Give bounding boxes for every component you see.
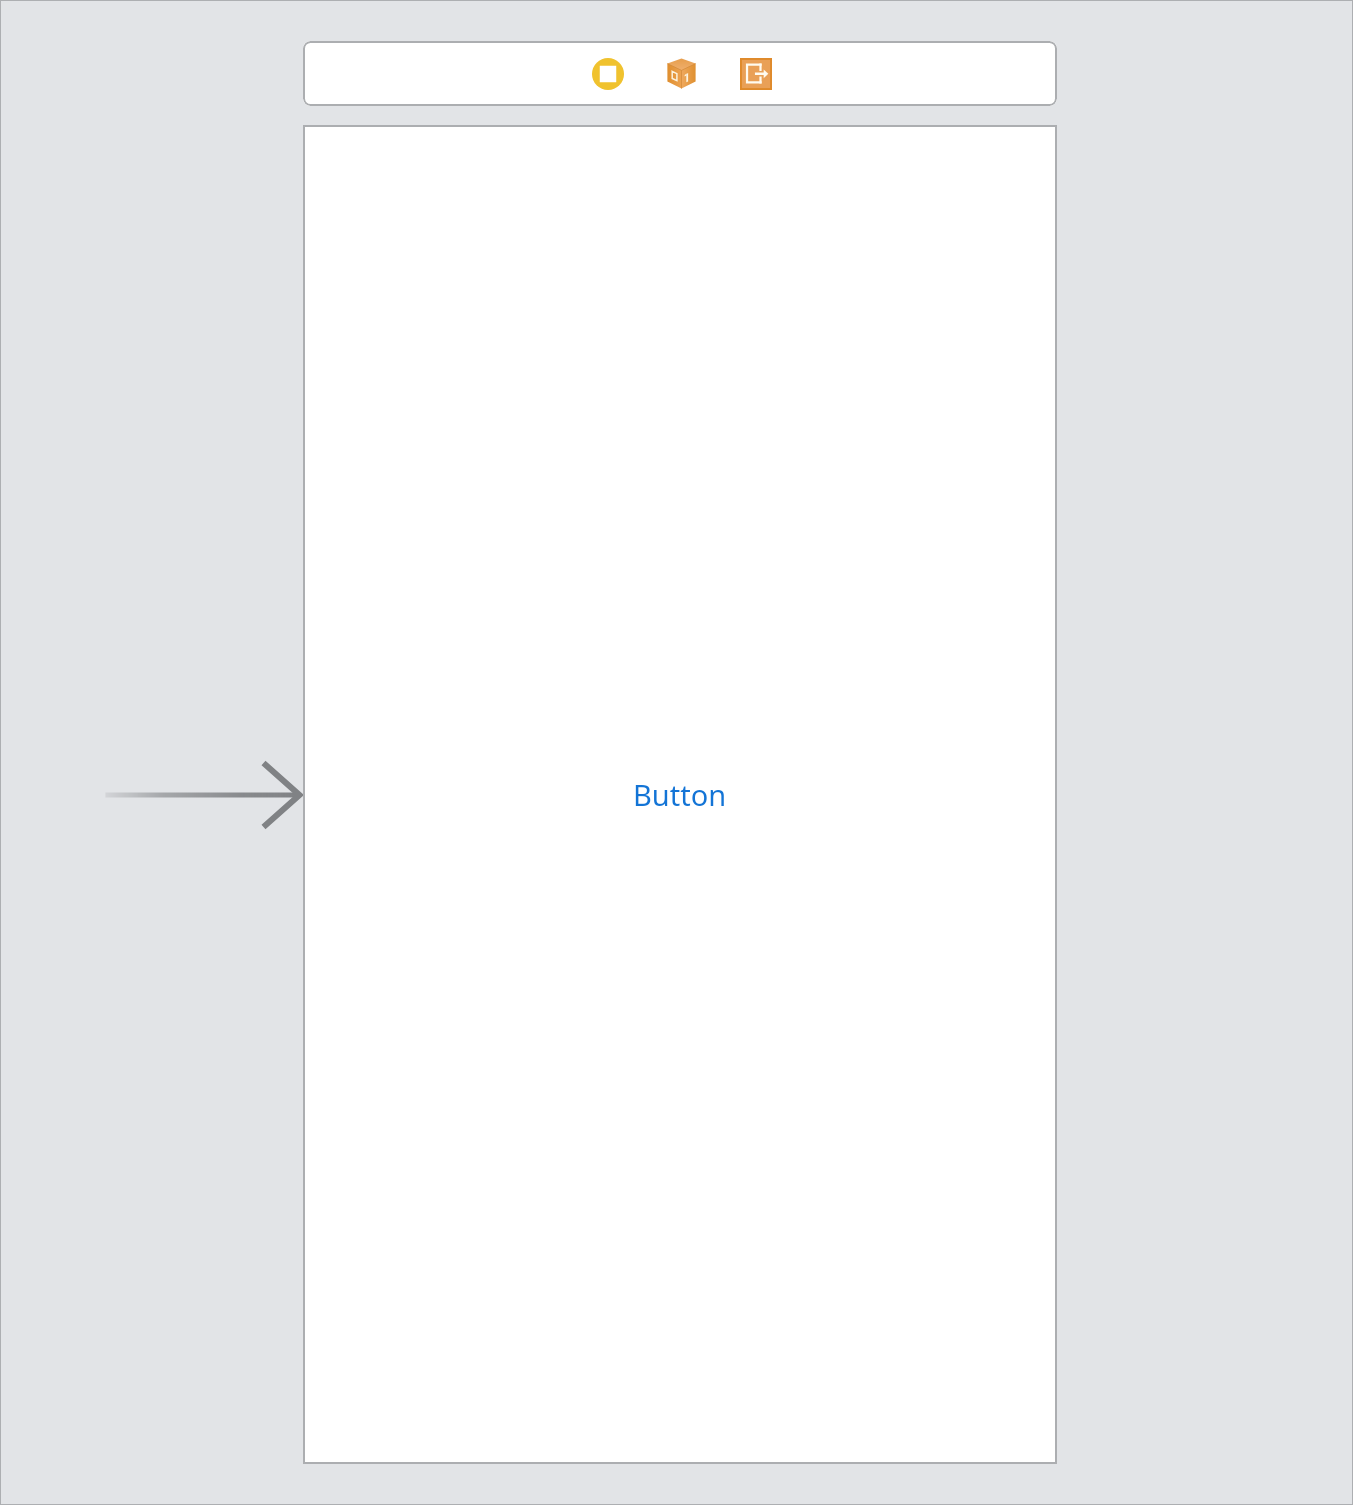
button[interactable]: View controller xyxy=(592,58,624,90)
button[interactable]: Button xyxy=(633,775,727,814)
button[interactable]: First responder xyxy=(667,58,696,89)
button[interactable]: Exit xyxy=(740,58,772,90)
